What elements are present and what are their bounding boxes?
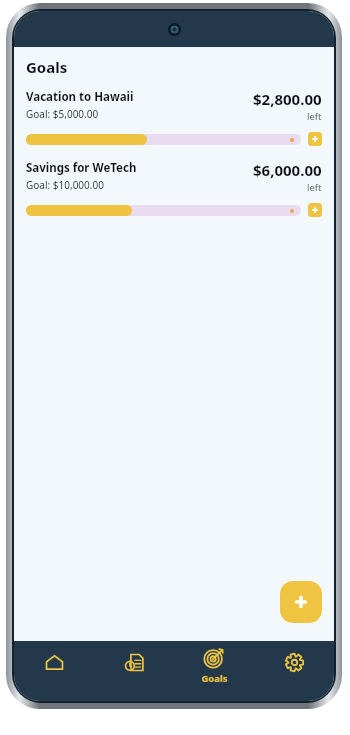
button[interactable]: Add to goal: [308, 132, 322, 146]
staticText: Goals: [201, 672, 228, 685]
staticText: Vacation to Hawaii: [26, 89, 134, 105]
staticText: Goal: $5,000.00: [26, 107, 99, 121]
staticText: $2,800.00: [253, 89, 322, 109]
staticText: Goals: [26, 57, 68, 77]
staticText: Savings for WeTech: [26, 160, 137, 176]
button[interactable]: Settings: [254, 641, 334, 701]
button[interactable]: History: [94, 641, 174, 701]
staticText: left: [307, 110, 322, 123]
button[interactable]: Add to goal: [308, 203, 322, 217]
button[interactable]: Savings for WeTech: [14, 160, 334, 217]
button[interactable]: Add goal: [280, 581, 322, 623]
staticText: Goal: $10,000.00: [26, 178, 104, 192]
button[interactable]: Goals: [174, 641, 254, 701]
button[interactable]: Vacation to Hawaii: [14, 89, 334, 146]
staticText: left: [307, 181, 322, 194]
button[interactable]: Home: [14, 641, 94, 701]
staticText: $6,000.00: [253, 160, 322, 180]
